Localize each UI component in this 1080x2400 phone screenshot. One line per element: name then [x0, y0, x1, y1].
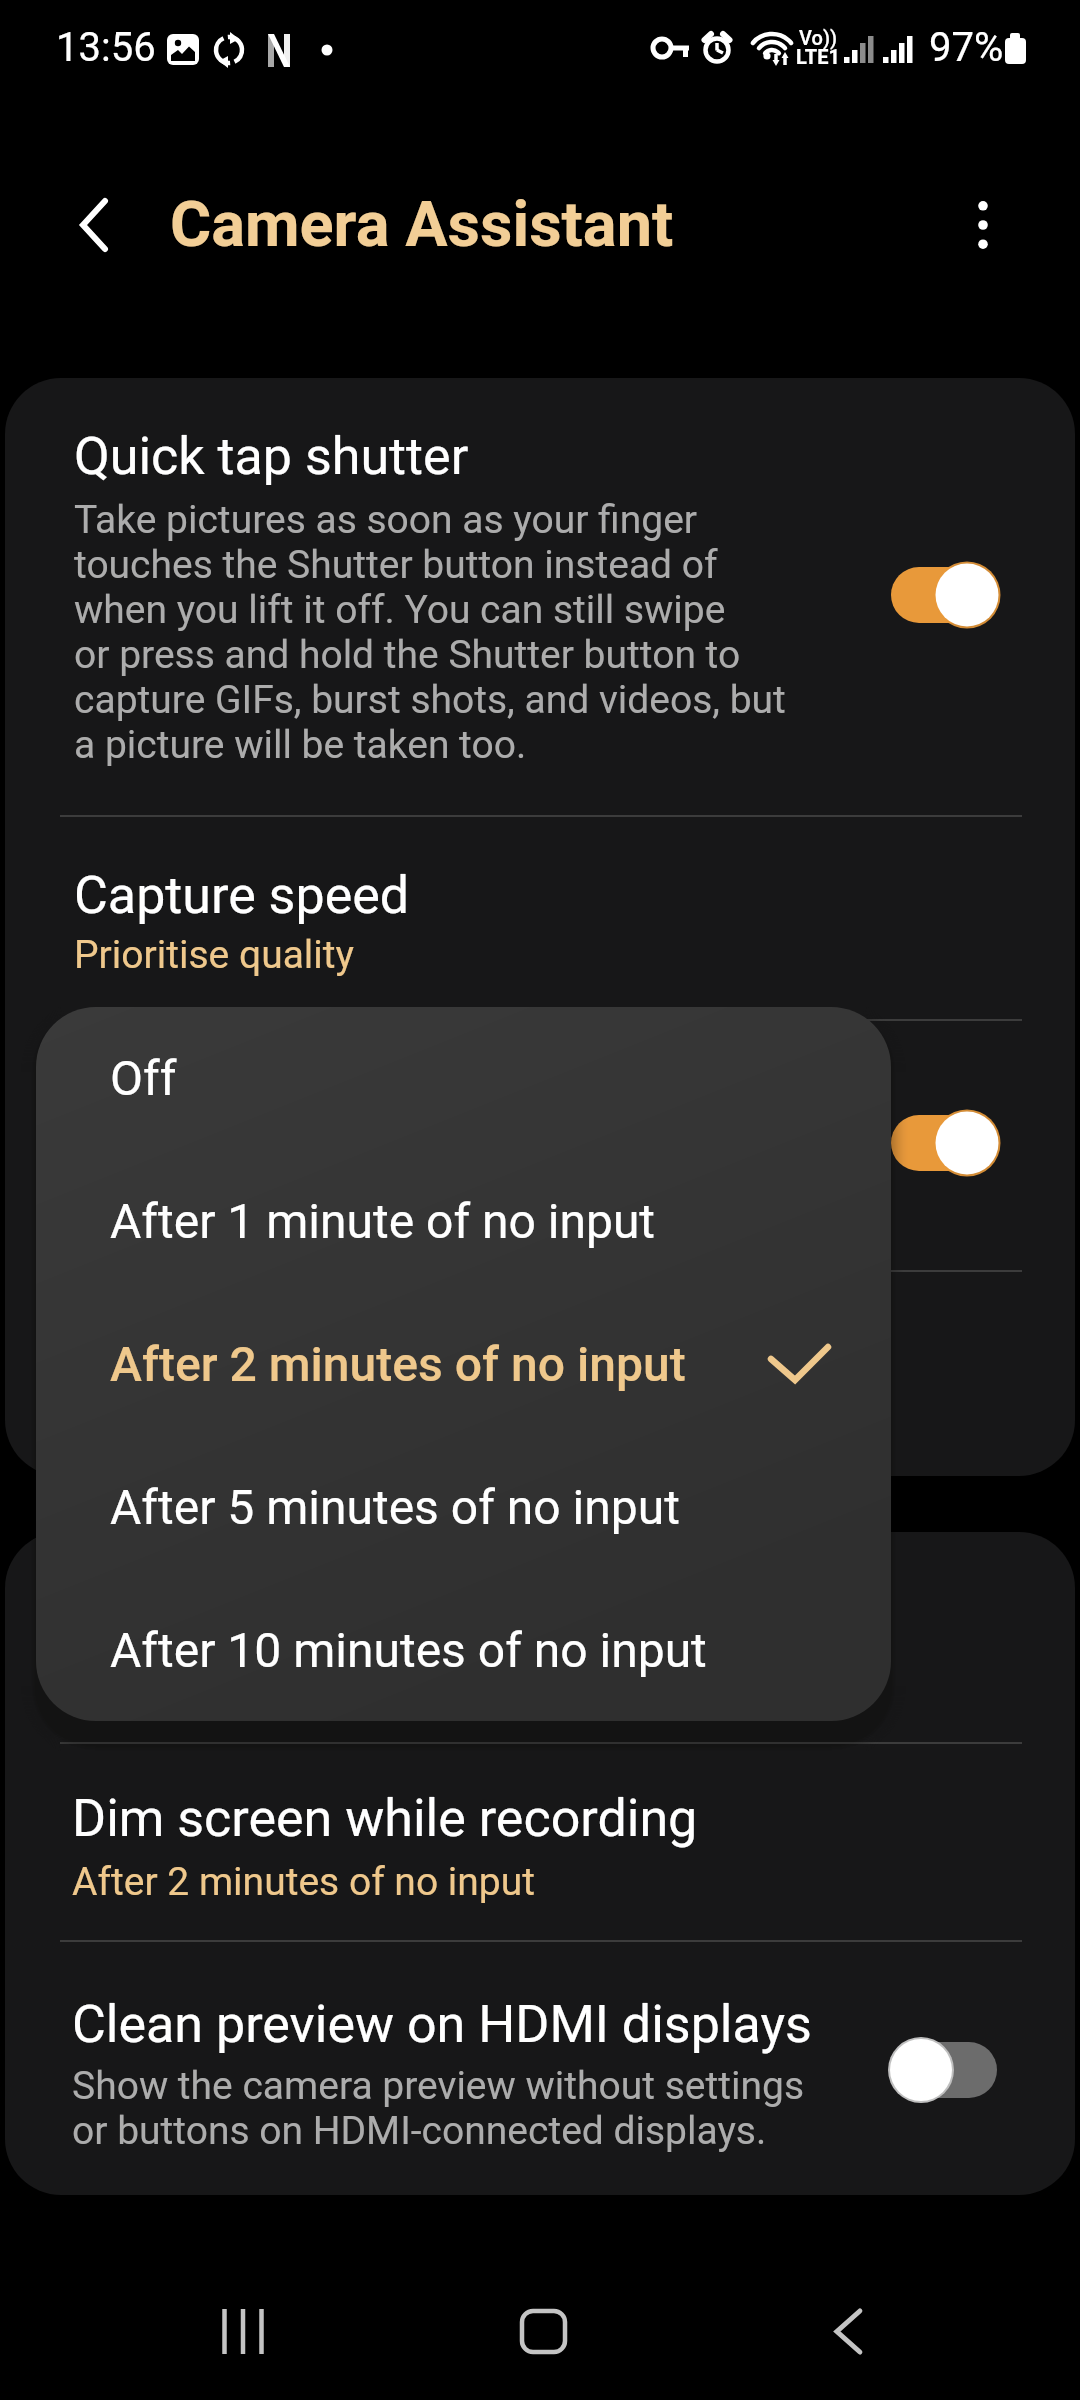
staticText: Off	[110, 1050, 177, 1106]
staticText: After 10 minutes of no input	[110, 1622, 707, 1678]
button[interactable]: Back	[787, 2256, 907, 2400]
button[interactable]: Navigate up	[39, 150, 149, 300]
button[interactable]: Dim screen while recording	[5, 1742, 1075, 1942]
button[interactable]: Home	[483, 2256, 603, 2400]
staticText: After 1 minute of no input	[110, 1193, 656, 1249]
staticText: After 5 minutes of no input	[110, 1479, 680, 1535]
button[interactable]: Off	[36, 1007, 891, 1150]
button[interactable]: Clean preview on HDMI displays	[5, 1940, 1075, 2195]
button[interactable]: More options	[928, 150, 1038, 300]
button[interactable]	[5, 1019, 1075, 1270]
staticText: After 2 minutes of no input	[110, 1336, 686, 1392]
button[interactable]: After 10 minutes of no input	[36, 1579, 891, 1721]
button[interactable]: Quick tap shutter	[5, 378, 1075, 815]
staticText: Prioritise quality	[74, 932, 355, 978]
staticText: Show the camera preview without settings…	[72, 2063, 892, 2153]
staticText: Clean preview on HDMI displays	[72, 1994, 812, 2055]
staticText: Take pictures as soon as your finger tou…	[74, 497, 874, 767]
button[interactable]: After 5 minutes of no input	[36, 1436, 891, 1579]
staticText: Quick tap shutter	[74, 426, 469, 487]
button[interactable]: Capture speed	[5, 815, 1075, 1019]
staticText: Capture speed	[74, 865, 410, 926]
button[interactable]: Recent apps	[183, 2256, 303, 2400]
staticText: 13:56	[56, 24, 156, 71]
staticText: Dim screen while recording	[72, 1788, 698, 1849]
staticText: After 2 minutes of no input	[72, 1859, 535, 1905]
staticText: 97%	[929, 24, 1004, 71]
button[interactable]: After 2 minutes of no input	[36, 1293, 891, 1436]
staticText: Camera Assistant	[170, 188, 674, 262]
button[interactable]: After 1 minute of no input	[36, 1150, 891, 1293]
staticText: Vo))	[799, 26, 838, 49]
staticText: LTE1	[796, 45, 840, 68]
